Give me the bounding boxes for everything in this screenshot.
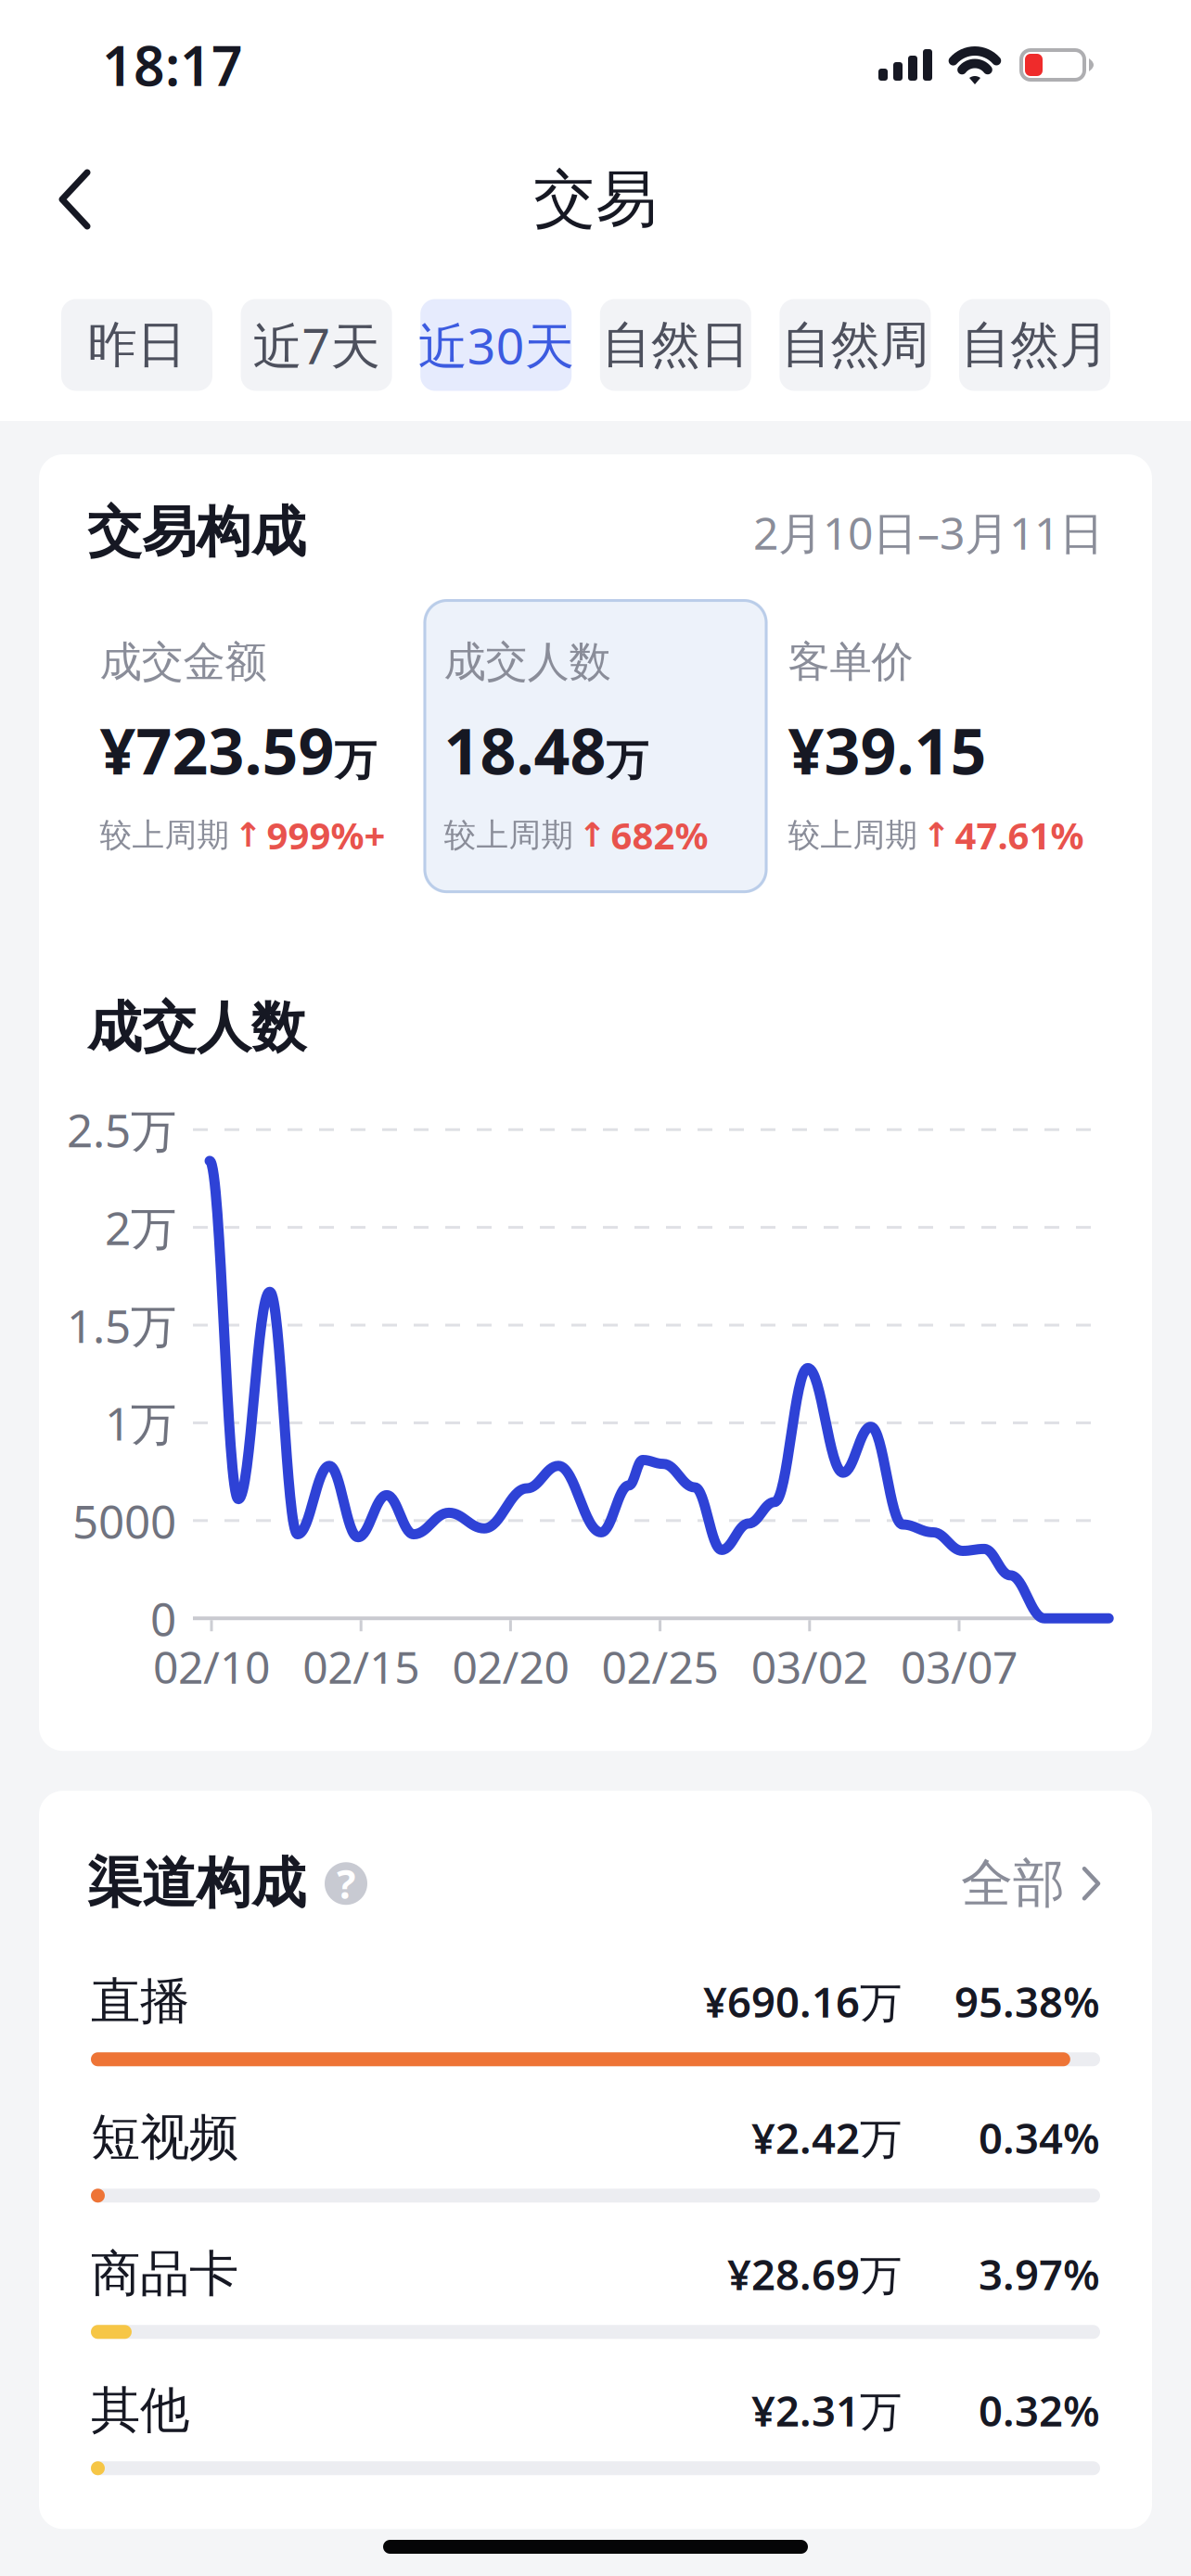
staticText: 成交人数 — [87, 994, 306, 1061]
staticText: 47.61% — [955, 810, 1084, 860]
staticText: 其他 — [91, 2380, 189, 2441]
staticText: 商品卡 — [91, 2244, 238, 2304]
staticText: 95.38% — [954, 1973, 1100, 2029]
staticText: 18.48 — [444, 708, 606, 792]
staticText: 近7天 — [253, 312, 380, 378]
staticText: 02/25 — [602, 1637, 718, 1696]
staticText: 2万 — [105, 1197, 176, 1258]
staticText: 客单价 — [788, 636, 913, 688]
staticText: 昨日 — [88, 315, 186, 375]
button[interactable]: 自然日 — [600, 299, 751, 391]
button[interactable]: 客单价 — [768, 599, 1112, 893]
staticText: 02/10 — [153, 1637, 270, 1696]
staticText: 成交金额 — [100, 636, 267, 688]
staticText: 近30天 — [418, 312, 574, 378]
staticText: ¥39.15 — [788, 708, 986, 792]
staticText: 2.5万 — [67, 1099, 176, 1160]
staticText: 直播 — [91, 1971, 189, 2032]
staticText: ↑ — [234, 816, 262, 854]
staticText: ¥2.42万 — [751, 2110, 902, 2166]
staticText: 682% — [611, 810, 708, 860]
button[interactable]: 近30天 — [420, 299, 572, 391]
button[interactable]: 自然周 — [780, 299, 931, 391]
staticText: 短视频 — [91, 2107, 238, 2168]
staticText: ? — [337, 1857, 355, 1910]
staticText: 0.32% — [979, 2382, 1100, 2438]
staticText: 999%+ — [267, 810, 385, 860]
staticText: 全部 — [961, 1852, 1065, 1915]
staticText: 自然周 — [781, 315, 929, 375]
staticText: 1万 — [105, 1393, 176, 1453]
staticText: 交易构成 — [87, 499, 306, 566]
button[interactable]: 全部 — [961, 1852, 1104, 1915]
staticText: 交易 — [533, 161, 658, 237]
staticText: ¥690.16万 — [703, 1973, 902, 2029]
staticText: 0.34% — [979, 2110, 1100, 2166]
staticText: ¥2.31万 — [751, 2382, 902, 2438]
staticText: 02/20 — [452, 1637, 569, 1696]
staticText: 渠道构成 — [87, 1850, 306, 1917]
staticText: 2月10日–3月11日 — [753, 503, 1104, 562]
staticText: 较上周期 — [788, 815, 918, 855]
button[interactable]: 近7天 — [241, 299, 392, 391]
staticText: 自然日 — [602, 315, 749, 375]
button[interactable]: 成交金额 — [79, 599, 423, 893]
button[interactable]: 成交人数 — [423, 599, 768, 893]
staticText: 万 — [606, 735, 648, 786]
staticText: 万 — [334, 735, 376, 786]
staticText: 自然月 — [961, 315, 1108, 375]
staticText: ¥28.69万 — [727, 2246, 902, 2302]
button[interactable]: Back — [33, 148, 119, 250]
button[interactable]: 昨日 — [61, 299, 212, 391]
staticText: 18:17 — [102, 29, 243, 101]
staticText: ↑ — [922, 816, 950, 854]
staticText: 1.5万 — [67, 1295, 176, 1356]
staticText: ¥723.59 — [100, 708, 334, 792]
staticText: 较上周期 — [444, 815, 574, 855]
staticText: 03/02 — [751, 1637, 868, 1696]
staticText: 5000 — [72, 1490, 176, 1551]
staticText: 成交人数 — [444, 636, 611, 688]
staticText: 02/15 — [303, 1637, 419, 1696]
staticText: ↑ — [578, 816, 606, 854]
staticText: 3.97% — [979, 2246, 1100, 2302]
staticText: 03/07 — [901, 1637, 1018, 1696]
button[interactable]: 自然月 — [959, 299, 1110, 391]
staticText: 较上周期 — [100, 815, 230, 855]
staticText: 0 — [150, 1588, 176, 1649]
